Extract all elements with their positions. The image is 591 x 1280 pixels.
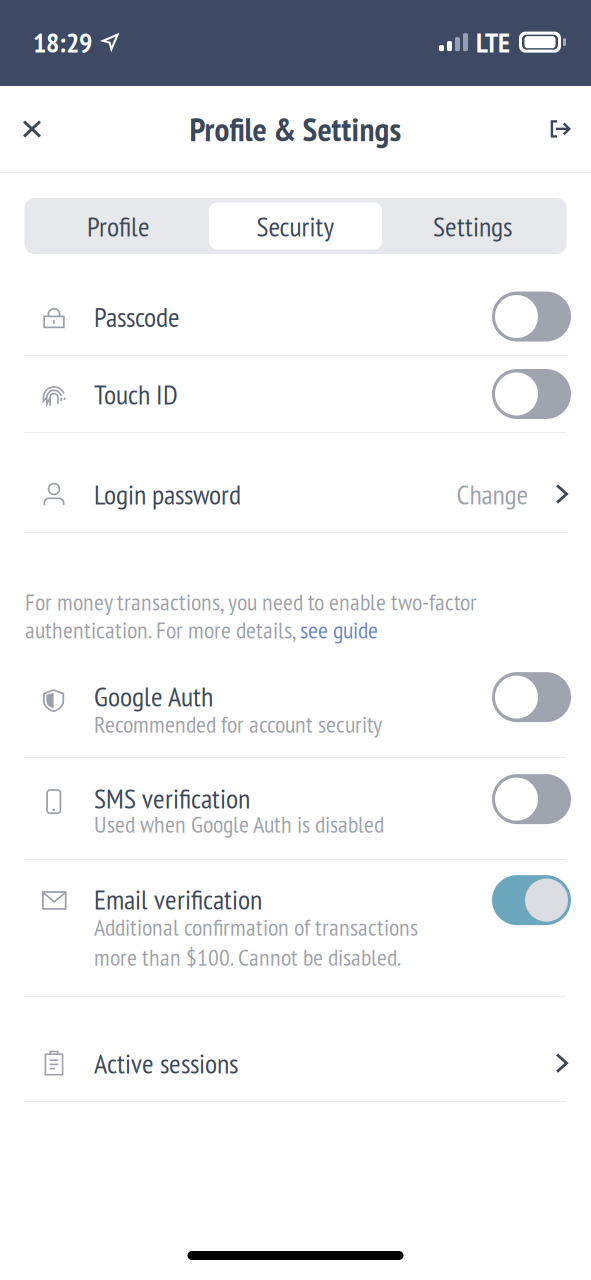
staticText: SMS verification [94,780,250,816]
staticText: Login password [94,476,241,512]
staticText: Active sessions [94,1045,238,1081]
button[interactable]: Security [209,202,382,249]
staticText: more than $100. Cannot be disabled. [94,941,401,972]
staticText: Settings [433,208,512,244]
staticText: Touch ID [94,376,178,412]
staticText: Profile & Settings [189,107,401,150]
staticText: For money transactions, you need to enab… [25,586,477,617]
staticText: Security [256,208,334,244]
button[interactable]: Email verification [0,860,591,996]
staticText: Google Auth [94,678,213,714]
button[interactable]: Log out [527,86,591,172]
button[interactable]: Google Auth [0,665,591,757]
button[interactable]: Touch ID [0,356,591,432]
button[interactable]: SMS verification [0,758,591,859]
staticText: Passcode [94,298,180,335]
staticText: Additional confirmation of transactions [94,911,418,942]
staticText: Profile [87,208,150,244]
button[interactable]: Settings [382,198,563,254]
staticText: 18:29 [33,24,92,60]
button[interactable]: Login password [0,456,591,532]
staticText: LTE [476,24,510,60]
button[interactable]: Close [0,86,64,172]
staticText: Email verification [94,881,262,917]
staticText: Used when Google Auth is disabled [94,808,384,839]
staticText: see guide [300,614,378,645]
staticText: Recommended for account security [94,708,382,739]
staticText: authentication. For more details, [25,614,300,645]
button[interactable]: Profile [28,198,209,254]
staticText: Change [457,476,529,512]
button[interactable]: see guide [300,614,378,645]
button[interactable]: Active sessions [0,1025,591,1101]
button[interactable]: Passcode [0,278,591,355]
